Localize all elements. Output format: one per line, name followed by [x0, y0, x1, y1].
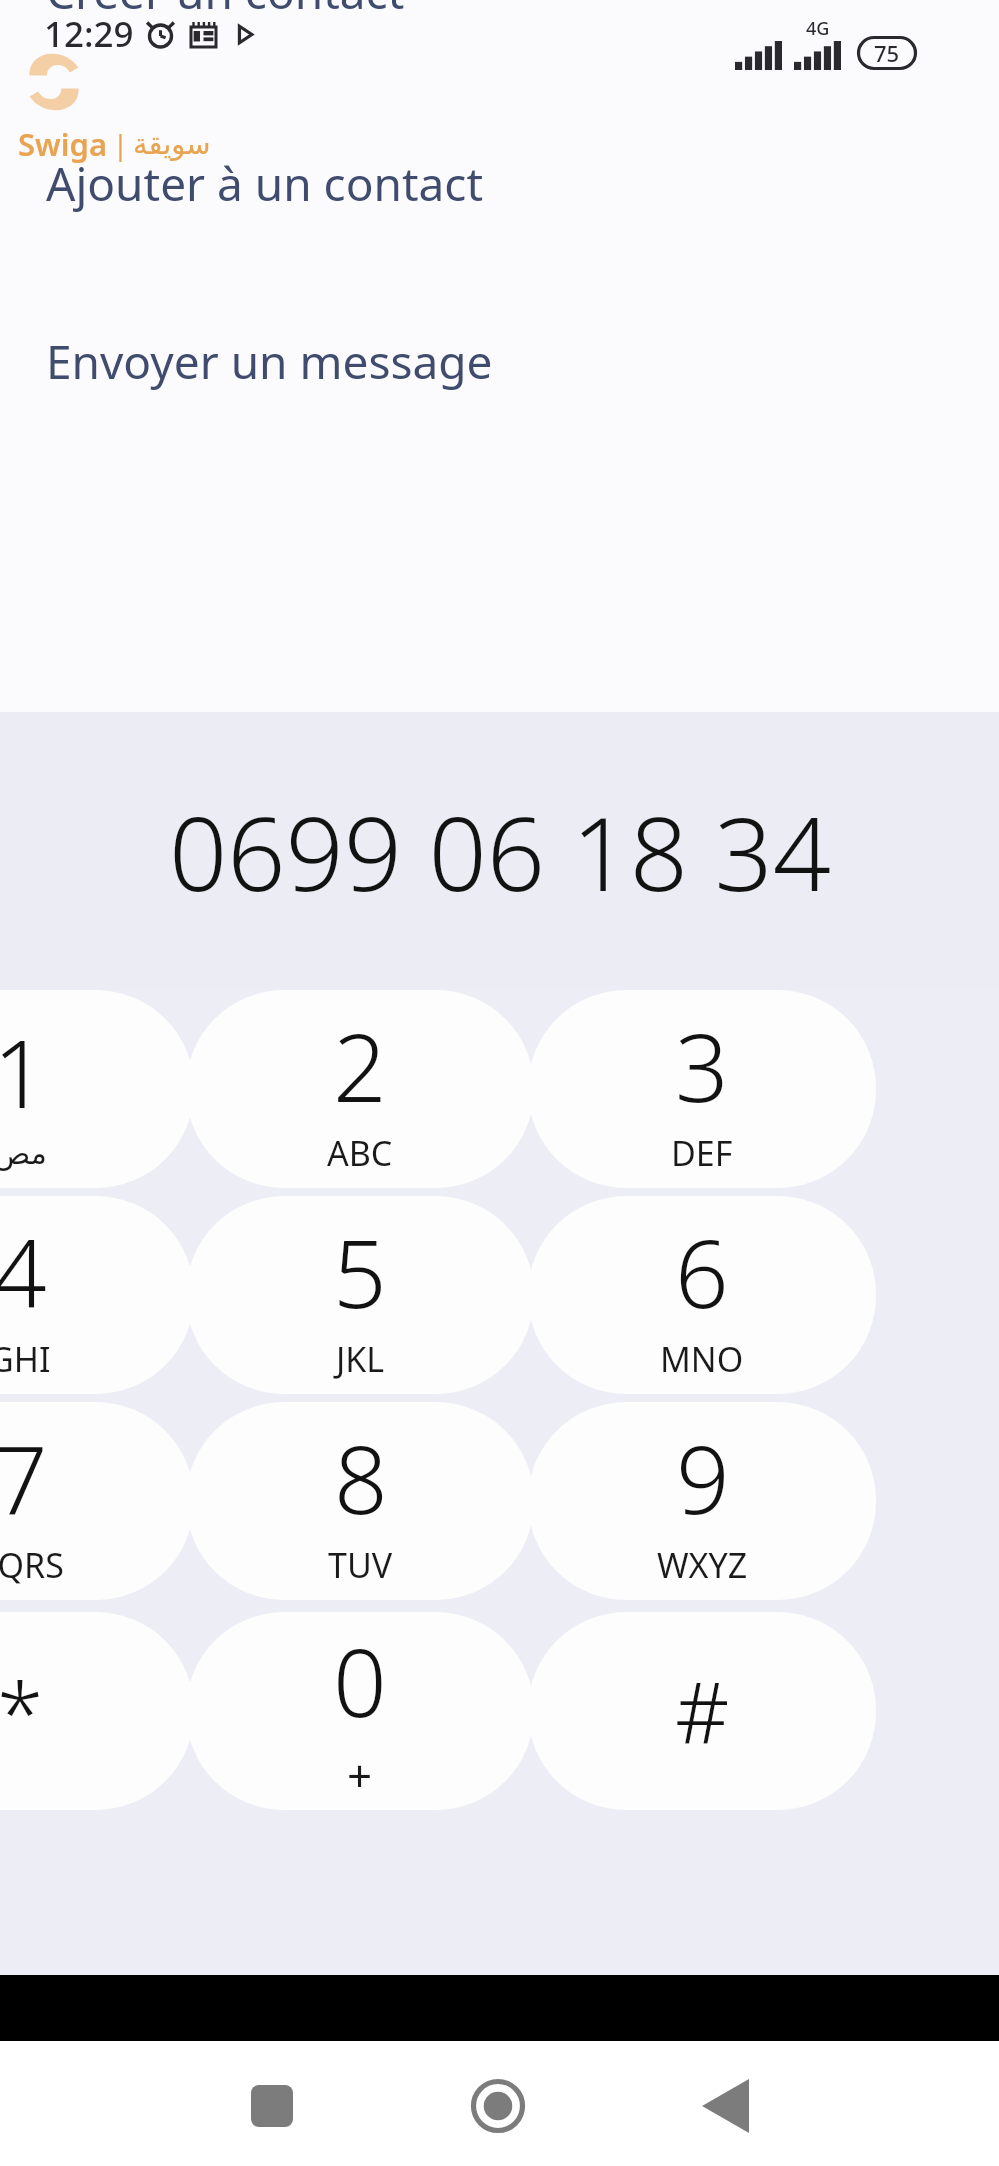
- button[interactable]: 9: [528, 1402, 876, 1600]
- staticText: مص: [0, 1136, 47, 1171]
- button[interactable]: Recent apps: [233, 2067, 311, 2145]
- button[interactable]: Créer un contact: [46, 0, 405, 23]
- staticText: TUV: [328, 1542, 393, 1588]
- staticText: 0: [333, 1617, 387, 1745]
- staticText: +: [347, 1745, 373, 1805]
- button[interactable]: 4: [0, 1196, 194, 1394]
- button[interactable]: 1: [0, 990, 194, 1188]
- button[interactable]: 7: [0, 1402, 194, 1600]
- button[interactable]: Ajouter à un contact: [46, 152, 484, 215]
- button[interactable]: 3: [528, 990, 876, 1188]
- staticText: Créer un contact: [46, 0, 405, 23]
- staticText: #: [675, 1654, 730, 1768]
- staticText: |: [113, 126, 128, 163]
- staticText: 0699 06 18 34: [169, 782, 831, 921]
- button[interactable]: 6: [528, 1196, 876, 1394]
- button[interactable]: Back: [686, 2067, 764, 2145]
- staticText: Ajouter à un contact: [46, 152, 484, 215]
- staticText: 1: [0, 1008, 47, 1136]
- staticText: DEF: [671, 1130, 733, 1176]
- staticText: 7: [0, 1414, 48, 1542]
- button[interactable]: 5: [186, 1196, 534, 1394]
- button[interactable]: 8: [186, 1402, 534, 1600]
- staticText: 5: [333, 1208, 387, 1336]
- button[interactable]: #: [528, 1612, 876, 1810]
- staticText: 4G: [806, 16, 830, 41]
- staticText: 75: [874, 38, 900, 68]
- staticText: GHI: [0, 1336, 51, 1382]
- staticText: 4: [0, 1208, 47, 1336]
- staticText: 3: [675, 1002, 729, 1130]
- staticText: MNO: [660, 1336, 744, 1382]
- staticText: ABC: [327, 1130, 393, 1176]
- staticText: PQRS: [0, 1542, 64, 1588]
- staticText: Envoyer un message: [46, 330, 493, 393]
- button[interactable]: Envoyer un message: [46, 330, 493, 393]
- staticText: 9: [676, 1414, 730, 1542]
- staticText: 8: [334, 1414, 388, 1542]
- staticText: Swiga: [18, 123, 108, 165]
- button[interactable]: 0: [186, 1612, 534, 1810]
- button[interactable]: *: [0, 1612, 194, 1810]
- button[interactable]: Home: [459, 2067, 537, 2145]
- staticText: JKL: [336, 1336, 385, 1382]
- staticText: 6: [675, 1208, 729, 1336]
- staticText: سويقة: [133, 127, 211, 161]
- staticText: 12:29: [44, 10, 134, 58]
- button[interactable]: 2: [186, 990, 534, 1188]
- staticText: 2: [333, 1002, 387, 1130]
- staticText: WXYZ: [657, 1542, 748, 1588]
- staticText: *: [0, 1654, 44, 1768]
